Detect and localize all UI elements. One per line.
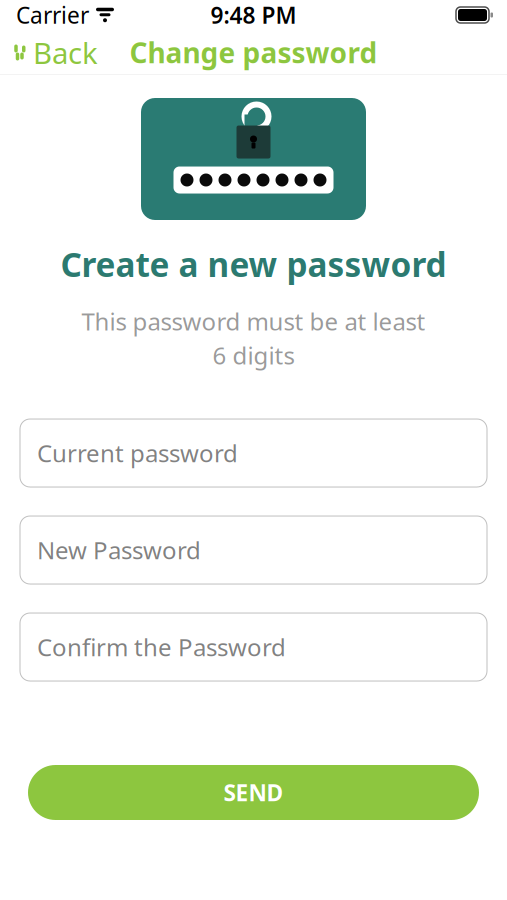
button[interactable]: Back bbox=[0, 30, 111, 74]
button[interactable]: New Password bbox=[20, 516, 487, 584]
staticText: This password must be at least bbox=[81, 305, 425, 337]
staticText: 6 digits bbox=[212, 339, 294, 371]
staticText: Confirm the Password bbox=[37, 631, 286, 663]
staticText: Carrier bbox=[16, 0, 89, 30]
staticText: New Password bbox=[37, 534, 201, 566]
staticText: Change password bbox=[129, 34, 377, 71]
staticText: Create a new password bbox=[60, 242, 446, 286]
button[interactable]: Confirm the Password bbox=[20, 613, 487, 681]
staticText: SEND bbox=[223, 777, 283, 807]
staticText: Back bbox=[33, 33, 98, 72]
staticText: Current password bbox=[37, 437, 238, 469]
button[interactable]: Current password bbox=[20, 419, 487, 487]
staticText: 9:48 PM bbox=[210, 0, 296, 30]
button[interactable]: SEND bbox=[28, 765, 479, 820]
